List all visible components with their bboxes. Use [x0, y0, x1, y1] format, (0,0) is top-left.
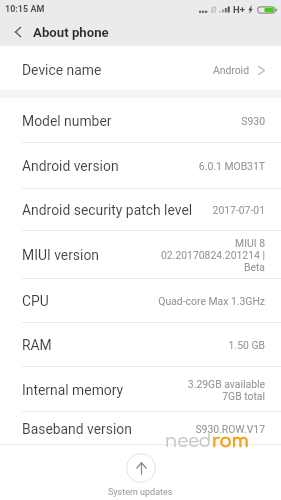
button[interactable]: Device name — [0, 46, 281, 90]
staticText: About phone — [33, 25, 109, 40]
staticText: 02.20170824.201214 | — [160, 249, 265, 261]
button[interactable]: System updates — [108, 453, 173, 498]
staticText: 3.29GB available — [187, 378, 265, 390]
staticText: 6.0.1 MOB31T — [198, 160, 265, 172]
staticText: Baseband version — [22, 421, 132, 437]
button[interactable]: MIUI version — [0, 231, 281, 279]
staticText: RAM — [22, 337, 52, 353]
button[interactable]: Model number — [0, 98, 281, 143]
button[interactable]: Baseband version — [0, 412, 281, 445]
staticText: need — [165, 431, 212, 451]
button[interactable]: Internal memory — [0, 367, 281, 412]
staticText: 7GB total — [222, 390, 265, 402]
button[interactable]: Android security patch level — [0, 189, 281, 231]
staticText: Android security patch level — [22, 202, 193, 218]
button[interactable]: Back — [0, 18, 33, 46]
button[interactable]: CPU — [0, 279, 281, 323]
staticText: Beta — [243, 261, 265, 273]
staticText: rom — [212, 431, 249, 451]
staticText: 10:15 AM — [5, 4, 45, 15]
staticText: H+ — [233, 4, 245, 15]
staticText: S930 — [241, 115, 265, 127]
staticText: Model number — [22, 113, 112, 129]
staticText: System updates — [108, 487, 173, 498]
staticText: MIUI version — [22, 247, 99, 263]
staticText: Quad-core Max 1.3GHz — [158, 295, 265, 307]
staticText: Android — [212, 64, 249, 76]
staticText: 2017-07-01 — [212, 204, 265, 216]
staticText: CPU — [22, 293, 49, 309]
button[interactable]: Android version — [0, 143, 281, 189]
staticText: S930.ROW.V17 — [195, 423, 265, 435]
staticText: Device name — [22, 62, 102, 78]
staticText: 1.50 GB — [228, 339, 265, 351]
staticText: MIUI 8 — [235, 237, 265, 249]
staticText: Internal memory — [22, 382, 124, 398]
staticText: Android version — [22, 158, 119, 174]
button[interactable]: RAM — [0, 323, 281, 367]
